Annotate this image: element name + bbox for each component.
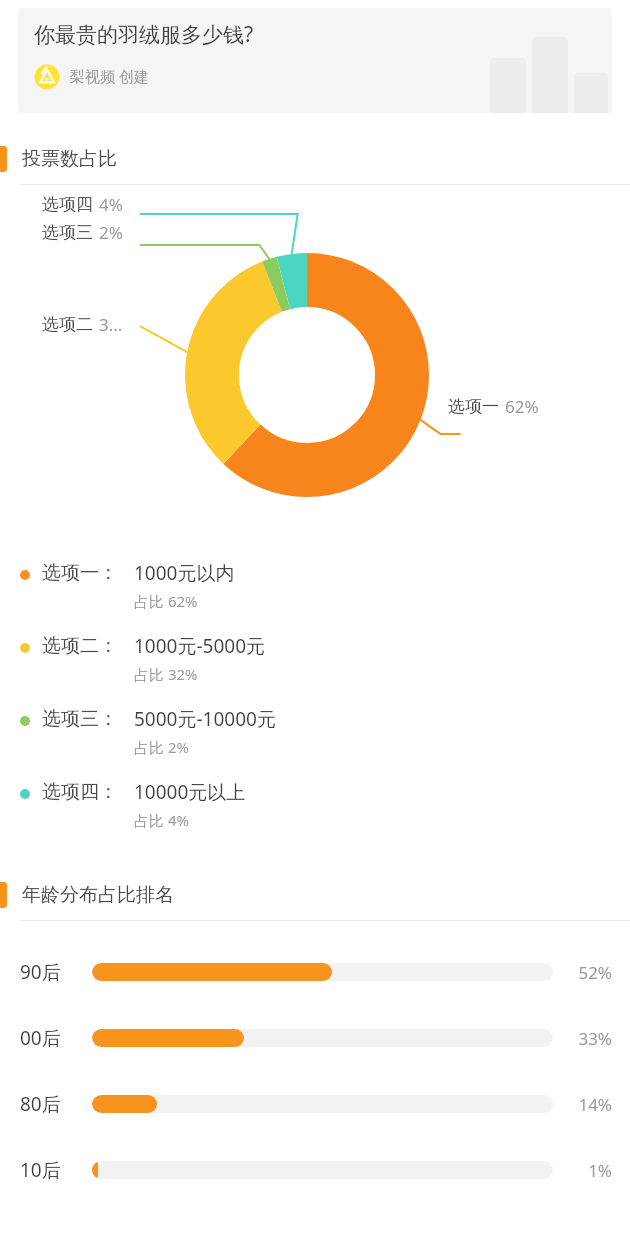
button[interactable]: 90后	[0, 939, 630, 1005]
button[interactable]: 10后	[0, 1137, 630, 1203]
staticText: 10000元以上	[134, 779, 246, 805]
staticText: 2%	[99, 221, 123, 244]
staticText: 选项二：	[42, 634, 118, 658]
staticText: 1000元以内	[134, 560, 235, 586]
staticText: 选项三：	[42, 707, 118, 731]
staticText: 00后	[20, 1025, 61, 1051]
button[interactable]: 选项一：	[0, 560, 630, 633]
staticText: 选项四	[42, 194, 93, 215]
staticText: 52%	[558, 961, 612, 984]
staticText: 选项四：	[42, 780, 118, 804]
staticText: 80后	[20, 1091, 61, 1117]
staticText: 选项三	[42, 222, 93, 243]
button[interactable]: 你最贵的羽绒服多少钱?	[18, 8, 612, 113]
button[interactable]: 00后	[0, 1005, 630, 1071]
staticText: 3...	[99, 313, 123, 336]
staticText: 占比 4%	[134, 810, 189, 830]
staticText: 10后	[20, 1157, 61, 1183]
staticText: 投票数占比	[22, 147, 117, 171]
staticText: 占比 62%	[134, 591, 198, 611]
staticText: 90后	[20, 959, 61, 985]
staticText: 梨视频 创建	[70, 66, 149, 86]
staticText: 4%	[99, 193, 123, 216]
staticText: 5000元-10000元	[134, 706, 276, 732]
staticText: 年龄分布占比排名	[22, 883, 174, 907]
staticText: 62%	[505, 395, 539, 418]
staticText: 选项一：	[42, 561, 118, 585]
staticText: 1%	[558, 1159, 612, 1182]
staticText: 33%	[558, 1027, 612, 1050]
button[interactable]: 80后	[0, 1071, 630, 1137]
staticText: 你最贵的羽绒服多少钱?	[34, 20, 254, 49]
button[interactable]: 选项四：	[0, 779, 630, 852]
button[interactable]: 选项二：	[0, 633, 630, 706]
button[interactable]: 选项三：	[0, 706, 630, 779]
staticText: 选项二	[42, 314, 93, 335]
staticText: 选项一	[448, 396, 499, 417]
staticText: 1000元-5000元	[134, 633, 266, 659]
staticText: 占比 2%	[134, 737, 189, 757]
staticText: 14%	[558, 1093, 612, 1116]
staticText: 占比 32%	[134, 664, 198, 684]
